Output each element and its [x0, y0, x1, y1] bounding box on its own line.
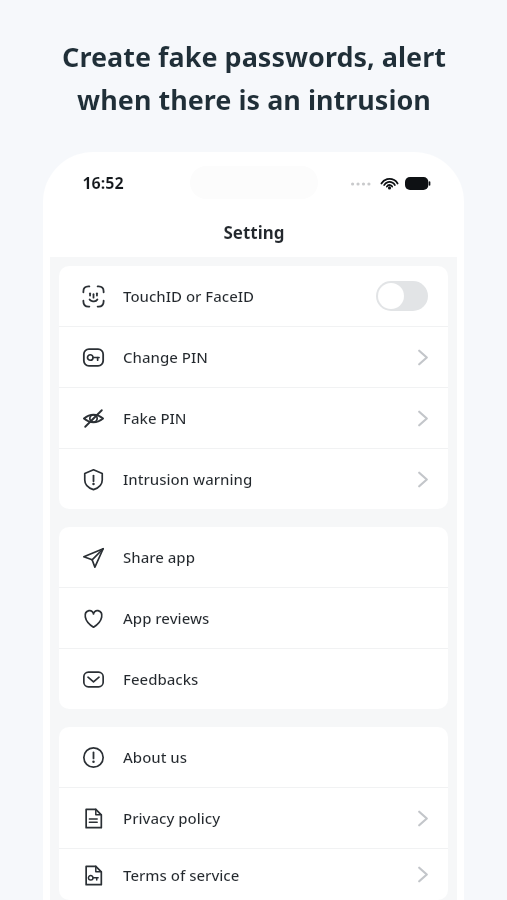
staticText: Share app	[123, 547, 195, 567]
button[interactable]: Privacy policy	[59, 788, 448, 848]
staticText: Change PIN	[123, 347, 208, 367]
button[interactable]: Fake PIN	[59, 388, 448, 448]
staticText: Terms of service	[123, 865, 240, 885]
button[interactable]: Toggle TouchID or FaceID	[376, 281, 428, 311]
staticText: Intrusion warning	[123, 469, 253, 489]
staticText: 16:52	[82, 172, 124, 194]
staticText: About us	[123, 747, 188, 767]
staticText: TouchID or FaceID	[123, 286, 255, 306]
staticText: Setting	[223, 221, 285, 244]
button[interactable]: Terms of service	[59, 849, 448, 900]
button[interactable]: TouchID or FaceID	[59, 266, 448, 326]
button[interactable]: Feedbacks	[59, 649, 448, 709]
staticText: Fake PIN	[123, 408, 187, 428]
button[interactable]: Share app	[59, 527, 448, 587]
staticText: Feedbacks	[123, 669, 199, 689]
button[interactable]: About us	[59, 727, 448, 787]
button[interactable]: Intrusion warning	[59, 449, 448, 509]
button[interactable]: App reviews	[59, 588, 448, 648]
staticText: when there is an intrusion	[77, 81, 431, 118]
staticText: App reviews	[123, 608, 210, 628]
staticText: Privacy policy	[123, 808, 221, 828]
button[interactable]: Change PIN	[59, 327, 448, 387]
staticText: Create fake passwords, alert	[62, 38, 446, 75]
